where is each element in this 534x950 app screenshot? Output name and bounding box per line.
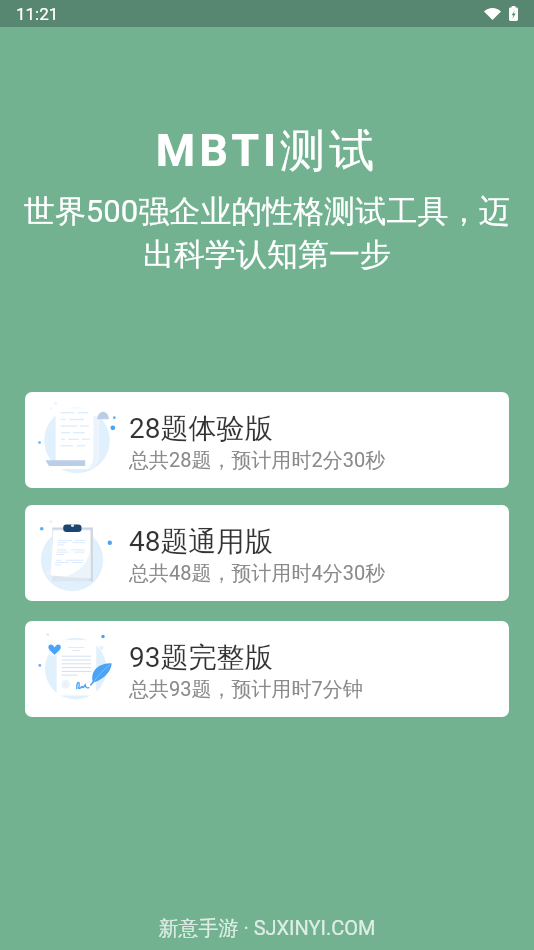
other: Battery charging — [509, 6, 518, 21]
staticText: 新意手游 · SJXINYI.COM — [0, 916, 534, 941]
staticText: 总共28题，预计用时2分30秒 — [129, 448, 386, 473]
staticText: 总共48题，预计用时4分30秒 — [129, 561, 386, 586]
staticText: MBTI测试 — [0, 123, 534, 180]
staticText: 28题体验版 — [129, 411, 273, 446]
staticText: 11:21 — [16, 4, 59, 24]
button[interactable]: 48题通用版 — [25, 505, 509, 601]
staticText: 总共93题，预计用时7分钟 — [129, 677, 363, 702]
button[interactable]: 93题完整版 — [25, 621, 509, 717]
staticText: 48题通用版 — [129, 524, 273, 559]
staticText: 世界500强企业的性格测试工具，迈出科学认知第一步 — [22, 192, 512, 274]
staticText: 93题完整版 — [129, 640, 273, 675]
other: Wi-Fi signal — [484, 6, 501, 20]
button[interactable]: 28题体验版 — [25, 392, 509, 488]
